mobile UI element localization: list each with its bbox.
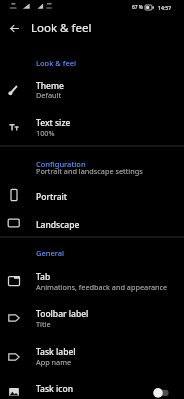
staticText: Text size	[36, 117, 71, 129]
staticText: 67 %	[132, 4, 143, 11]
button[interactable]	[0, 377, 184, 399]
staticText: Task label	[36, 346, 76, 358]
staticText: Look & feel	[36, 58, 77, 68]
staticText: General	[36, 248, 65, 258]
staticText: Theme	[36, 80, 64, 92]
staticText: Title	[36, 319, 51, 329]
button[interactable]	[0, 71, 184, 106]
button[interactable]	[0, 109, 184, 144]
staticText: Portrait	[36, 191, 68, 203]
button[interactable]: Task icon switch	[153, 388, 169, 398]
staticText: 100%	[36, 128, 55, 138]
button[interactable]	[0, 263, 184, 298]
button[interactable]	[0, 338, 184, 373]
staticText: Configuration	[36, 159, 86, 169]
staticText: Toolbar label	[36, 308, 89, 320]
button[interactable]	[0, 300, 184, 335]
staticText: Landscape	[36, 219, 80, 231]
staticText: 14:57	[158, 4, 172, 11]
staticText: App name	[36, 357, 72, 367]
staticText: Portrait and landscape settings	[36, 166, 143, 176]
button[interactable]	[0, 183, 184, 208]
staticText: Tab	[36, 271, 51, 283]
staticText: Look & feel	[31, 20, 92, 36]
staticText: Default	[36, 90, 62, 100]
staticText: Task icon	[36, 383, 74, 395]
button[interactable]: Navigate up	[3, 17, 25, 39]
staticText: Animations, feedback and appearance	[36, 282, 168, 292]
button[interactable]	[0, 211, 184, 236]
